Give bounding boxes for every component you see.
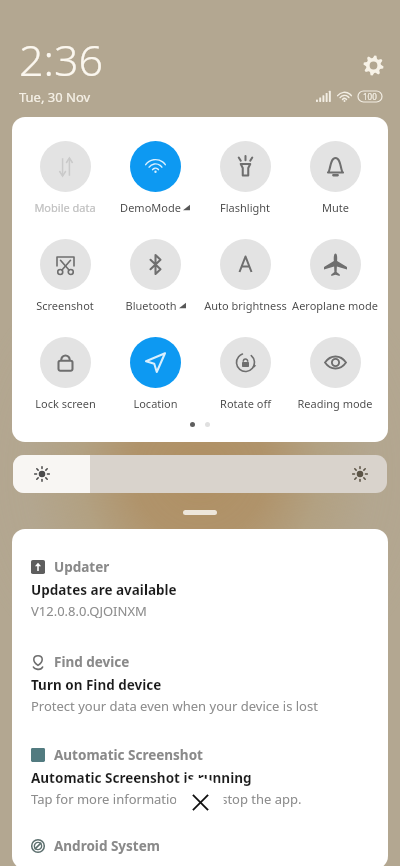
button[interactable]: Reading mode xyxy=(290,337,380,411)
staticText: Protect your data even when your device … xyxy=(31,697,318,715)
staticText: Location xyxy=(133,396,178,411)
button[interactable]: Aeroplane mode xyxy=(290,239,380,313)
staticText: Auto brightness xyxy=(204,298,287,313)
button[interactable]: Automatic Screenshot xyxy=(31,746,369,808)
staticText: DemoMode xyxy=(120,200,181,215)
staticText: Tue, 30 Nov xyxy=(19,88,91,106)
button[interactable]: Mute xyxy=(290,141,380,215)
staticText: Automatic Screenshot xyxy=(54,746,203,764)
staticText: Reading mode xyxy=(297,396,373,411)
button[interactable]: Auto brightness xyxy=(200,239,290,313)
staticText: Flashlight xyxy=(220,200,270,215)
staticText: Turn on Find device xyxy=(31,676,162,694)
staticText: Lock screen xyxy=(35,396,96,411)
button[interactable]: Brightness xyxy=(13,455,387,493)
staticText: Mobile data xyxy=(34,200,96,215)
button[interactable]: Mobile data xyxy=(20,141,110,215)
button[interactable]: Bluetooth xyxy=(110,239,200,313)
button[interactable]: Close notifications xyxy=(176,778,224,826)
staticText: Mute xyxy=(322,200,349,215)
button[interactable]: Updater xyxy=(31,558,369,620)
button[interactable]: Settings xyxy=(361,53,385,77)
staticText: Bluetooth xyxy=(125,298,177,313)
button[interactable]: Screenshot xyxy=(20,239,110,313)
staticText: Find device xyxy=(54,653,130,671)
staticText: Updates are available xyxy=(31,581,177,599)
button[interactable]: Location xyxy=(110,337,200,411)
staticText: V12.0.8.0.QJOINXM xyxy=(31,602,147,620)
staticText: Android System xyxy=(54,837,160,855)
staticText: Screenshot xyxy=(36,298,94,313)
button[interactable]: Find device xyxy=(31,653,369,715)
staticText: 100 xyxy=(363,91,377,102)
staticText: Updater xyxy=(54,558,110,576)
button[interactable]: Rotate off xyxy=(200,337,290,411)
staticText: Rotate off xyxy=(220,396,271,411)
button[interactable]: Android System xyxy=(31,837,369,855)
button[interactable]: Flashlight xyxy=(200,141,290,215)
staticText: 2:36 xyxy=(19,30,104,89)
button[interactable]: Lock screen xyxy=(20,337,110,411)
button[interactable]: DemoMode xyxy=(110,141,200,215)
staticText: Aeroplane mode xyxy=(292,298,378,313)
staticText: Automatic Screenshot is running xyxy=(31,769,252,787)
staticText: Tap for more information or to stop the … xyxy=(31,790,302,808)
